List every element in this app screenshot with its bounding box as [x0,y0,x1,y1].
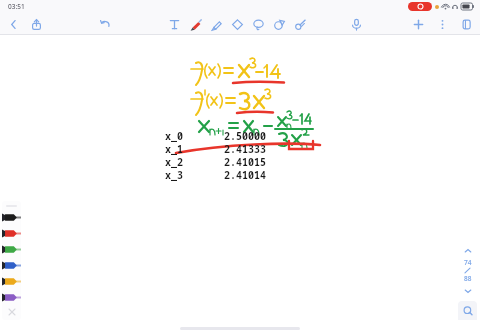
button[interactable]: Pen colour [2,257,21,273]
staticText: 2.41333 [224,142,266,155]
button[interactable]: Shape tool [271,16,288,33]
button[interactable]: Eraser [229,16,246,33]
button[interactable]: Text tool [166,16,183,33]
button[interactable]: Zoom [458,301,477,320]
button[interactable]: Pen colour [2,225,21,241]
button[interactable]: Previous page [460,243,475,258]
button[interactable]: Laser pointer [292,16,309,33]
button[interactable]: Pages [458,16,475,33]
button[interactable]: Pen colour [2,289,21,305]
button[interactable]: More options [434,16,451,33]
button[interactable]: Pen colour [2,209,21,225]
staticText: 03:51 [8,2,25,11]
button[interactable]: Next page [460,283,475,298]
button[interactable]: Lasso select [250,16,267,33]
staticText: 2.50000 [224,129,266,142]
staticText: x_2 [165,155,224,168]
button[interactable]: Highlighter [208,16,225,33]
button[interactable]: Pen tool [187,16,204,33]
button[interactable]: Undo [97,16,114,33]
staticText: 2.41015 [224,155,266,168]
button[interactable]: Share [28,16,45,33]
button[interactable]: Back [5,16,22,33]
staticText: 88 [464,274,472,283]
button[interactable]: Pen colour [2,273,21,289]
button[interactable]: Close palette [5,305,18,318]
staticText: x_1 [165,142,224,155]
staticText: x_3 [165,168,224,181]
button[interactable]: Record audio [348,16,365,33]
staticText: x_0 [165,129,224,142]
staticText: 2.41014 [224,168,266,181]
staticText: 74 [464,258,472,267]
button[interactable]: Add [410,16,427,33]
button[interactable]: Pen colour [2,241,21,257]
